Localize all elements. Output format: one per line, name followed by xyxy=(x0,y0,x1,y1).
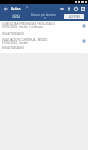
staticText: EVALUACION CONTINUA - MEDID xyxy=(2,38,48,42)
button[interactable]: ACEPTAR xyxy=(64,14,84,19)
button[interactable]: SIN ACTIVIDADES xyxy=(0,45,88,53)
button[interactable]: Info xyxy=(81,23,87,29)
staticText: -- xyxy=(84,48,86,51)
button[interactable]: Visibility xyxy=(58,5,65,13)
button[interactable]: EVALUACION CONTINUA - MEDID xyxy=(0,37,88,45)
button[interactable]: Bookmark xyxy=(65,5,72,13)
button[interactable]: History xyxy=(72,5,79,13)
staticText: Buscar por alumno o grupo xyxy=(31,13,58,17)
button[interactable]: CONSULTAR PRESENCIAS / RESULTADO xyxy=(0,21,88,30)
staticText: CONSULTAR PRESENCIAS / RESULTADO xyxy=(2,22,55,26)
staticText: SIN ACTIVIDADES xyxy=(2,46,24,50)
staticText: -- xyxy=(84,32,86,35)
staticText: curso xyxy=(13,12,20,15)
staticText: 15/02/2024 - Sesión xyxy=(2,41,28,45)
button[interactable]: Menu xyxy=(79,5,86,13)
staticText: SIN ACTIVIDADES xyxy=(2,32,24,36)
button[interactable]: Info xyxy=(81,38,87,44)
button[interactable]: Back xyxy=(2,5,9,12)
staticText: ACEPTAR xyxy=(69,15,80,19)
staticText: 23/24 xyxy=(12,15,20,19)
button[interactable]: SIN ACTIVIDADES xyxy=(0,30,88,37)
staticText: 01/01/2024 - Sesión 1 ordinaria xyxy=(2,25,43,29)
staticText: Aulas xyxy=(11,6,21,11)
